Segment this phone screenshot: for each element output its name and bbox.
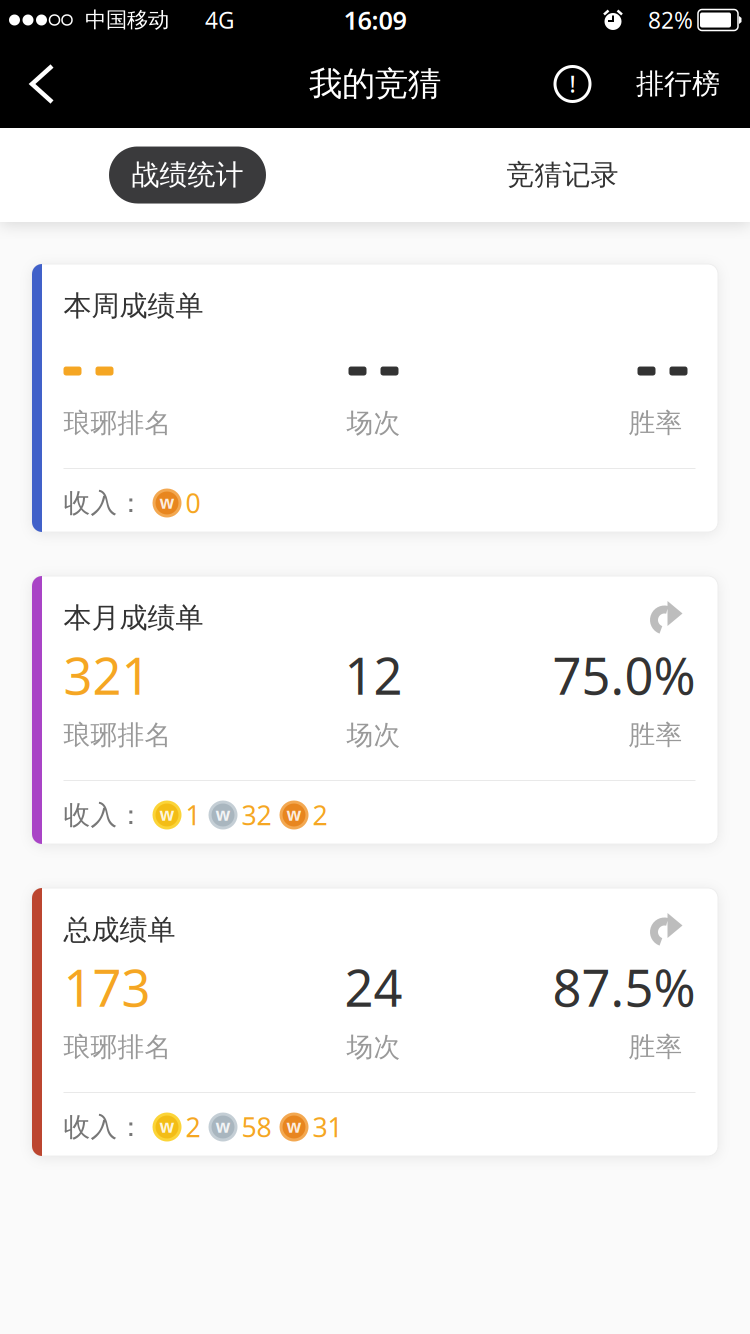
staticText: w (159, 490, 174, 513)
staticText: 2 (312, 797, 327, 833)
staticText: 收入： (63, 487, 144, 519)
staticText: 16:09 (343, 3, 406, 37)
staticText: 场次 (346, 719, 400, 751)
button[interactable]: Info (555, 40, 590, 128)
staticText: w (159, 802, 174, 825)
staticText: 4G (205, 5, 235, 35)
staticText: 排行榜 (636, 67, 720, 101)
staticText: 1 (185, 797, 200, 833)
button[interactable]: Back (0, 40, 72, 128)
staticText: 2 (185, 1109, 200, 1145)
staticText: 87.5% (552, 953, 695, 1021)
staticText: 24 (344, 953, 402, 1021)
staticText: 琅琊排名 (63, 719, 171, 751)
staticText: 中国移动 (85, 7, 169, 33)
staticText: 琅琊排名 (63, 1031, 171, 1063)
staticText: 琅琊排名 (63, 407, 171, 439)
staticText: 场次 (346, 1031, 400, 1063)
button[interactable]: Share (649, 601, 695, 635)
staticText: 82% (648, 5, 693, 35)
staticText: 0 (185, 485, 200, 521)
staticText: 收入： (63, 1111, 144, 1143)
staticText: 我的竞猜 (309, 63, 441, 104)
staticText: 58 (241, 1109, 271, 1145)
staticText: 32 (241, 797, 271, 833)
staticText: 胜率 (628, 407, 682, 439)
staticText: ! (569, 69, 575, 99)
staticText: w (286, 1114, 301, 1137)
staticText: 173 (63, 953, 150, 1021)
staticText: 战绩统计 (131, 158, 243, 192)
staticText: 总成绩单 (63, 913, 175, 947)
button[interactable]: 战绩统计 (0, 128, 375, 222)
staticText: 收入： (63, 799, 144, 831)
staticText: 31 (312, 1109, 342, 1145)
staticText: w (215, 802, 230, 825)
staticText: 321 (63, 641, 150, 709)
staticText: w (159, 1114, 174, 1137)
button[interactable]: 排行榜 (590, 40, 750, 128)
staticText: 竞猜记录 (506, 158, 618, 192)
staticText: 12 (344, 641, 402, 709)
staticText: w (215, 1114, 230, 1137)
staticText: 胜率 (628, 1031, 682, 1063)
staticText: 75.0% (552, 641, 695, 709)
staticText: w (286, 802, 301, 825)
staticText: 场次 (346, 407, 400, 439)
staticText: 本周成绩单 (63, 289, 203, 323)
staticText: 胜率 (628, 719, 682, 751)
button[interactable]: Share (649, 913, 695, 947)
button[interactable]: 竞猜记录 (375, 128, 750, 222)
staticText: 本月成绩单 (63, 601, 203, 635)
